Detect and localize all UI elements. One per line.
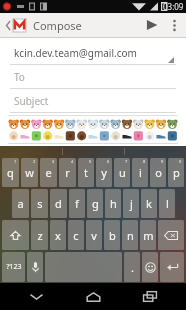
staticText: 6 <box>107 159 110 164</box>
staticText: b <box>109 228 116 243</box>
staticText: d <box>55 196 62 211</box>
staticText: f <box>75 196 79 211</box>
button[interactable]: f <box>69 189 85 218</box>
button[interactable]: z <box>31 220 48 250</box>
staticText: 1 <box>14 159 17 164</box>
staticText: 5 <box>89 159 92 164</box>
button[interactable]: d <box>50 189 67 218</box>
button[interactable]: t <box>78 158 94 187</box>
button[interactable]: l <box>159 189 175 218</box>
button[interactable]: r <box>59 158 76 187</box>
staticText: 9 <box>161 159 164 164</box>
staticText: 03:09 <box>163 1 184 12</box>
button[interactable]: Subject <box>0 89 186 112</box>
button[interactable]: More options <box>165 16 183 34</box>
staticText: i <box>139 165 142 180</box>
button[interactable]: q <box>2 158 19 187</box>
staticText: Subject <box>14 94 49 108</box>
button[interactable]: Key <box>2 220 29 250</box>
staticText: h <box>110 196 117 211</box>
button[interactable]: u <box>114 158 130 187</box>
staticText: m <box>143 228 154 243</box>
staticText: c <box>73 228 79 243</box>
staticText: o <box>155 165 162 180</box>
staticText: z <box>37 228 43 243</box>
staticText: k <box>146 196 152 211</box>
button[interactable]: ?123 <box>2 252 25 282</box>
staticText: u <box>119 165 126 180</box>
staticText: a <box>17 196 24 211</box>
button[interactable]: Back <box>15 283 57 310</box>
button[interactable]: Emoji picker <box>8 115 178 144</box>
staticText: y <box>101 165 107 180</box>
staticText: 7 <box>125 159 128 164</box>
button[interactable]: k <box>141 189 157 218</box>
button[interactable]: w <box>21 158 38 187</box>
staticText: g <box>92 196 99 211</box>
button[interactable]: i <box>132 158 148 187</box>
button[interactable]: b <box>104 220 120 250</box>
staticText: kcin.dev.team@gmail.com <box>14 46 137 60</box>
staticText: e <box>45 165 52 180</box>
staticText: 2 <box>33 159 36 164</box>
staticText: r <box>65 165 70 180</box>
button[interactable]: a <box>12 189 29 218</box>
button[interactable]: g <box>87 189 103 218</box>
staticText: 4 <box>71 159 74 164</box>
staticText: q <box>7 165 14 180</box>
button[interactable]: Home <box>72 283 114 310</box>
button[interactable]: To <box>0 65 186 88</box>
button[interactable]: h <box>105 189 121 218</box>
button[interactable]: p <box>168 158 184 187</box>
button[interactable]: Recent apps <box>129 283 171 310</box>
button[interactable]: Key <box>27 252 43 282</box>
staticText: x <box>55 228 61 243</box>
button[interactable]: Send <box>139 13 165 37</box>
button[interactable]: Key <box>160 252 184 282</box>
staticText: ?123 <box>6 262 22 272</box>
button[interactable]: s <box>31 189 48 218</box>
staticText: 3 <box>52 159 55 164</box>
button[interactable]: Key <box>158 220 184 250</box>
staticText: 8 <box>143 159 146 164</box>
button[interactable]: x <box>50 220 66 250</box>
button[interactable]: e <box>40 158 57 187</box>
staticText: j <box>130 196 133 211</box>
staticText: Compose <box>33 18 82 33</box>
button[interactable]: Key <box>142 252 158 282</box>
staticText: s <box>37 196 43 211</box>
staticText: v <box>91 228 97 243</box>
button[interactable]: j <box>123 189 139 218</box>
button[interactable]: m <box>140 220 156 250</box>
staticText: To <box>14 70 25 84</box>
button[interactable]: c <box>68 220 84 250</box>
button[interactable]: Navigate up <box>3 17 28 34</box>
staticText: n <box>127 228 134 243</box>
button[interactable]: o <box>150 158 166 187</box>
staticText: w <box>25 165 34 180</box>
button[interactable]: v <box>86 220 102 250</box>
button[interactable]: n <box>122 220 138 250</box>
staticText: . <box>131 260 134 275</box>
button[interactable]: . <box>124 252 140 282</box>
button[interactable]: y <box>96 158 112 187</box>
staticText: 0 <box>179 159 182 164</box>
staticText: t <box>84 165 88 180</box>
staticText: p <box>173 165 180 180</box>
button[interactable]: kcin.dev.team@gmail.com <box>0 41 186 64</box>
staticText: l <box>166 196 169 211</box>
